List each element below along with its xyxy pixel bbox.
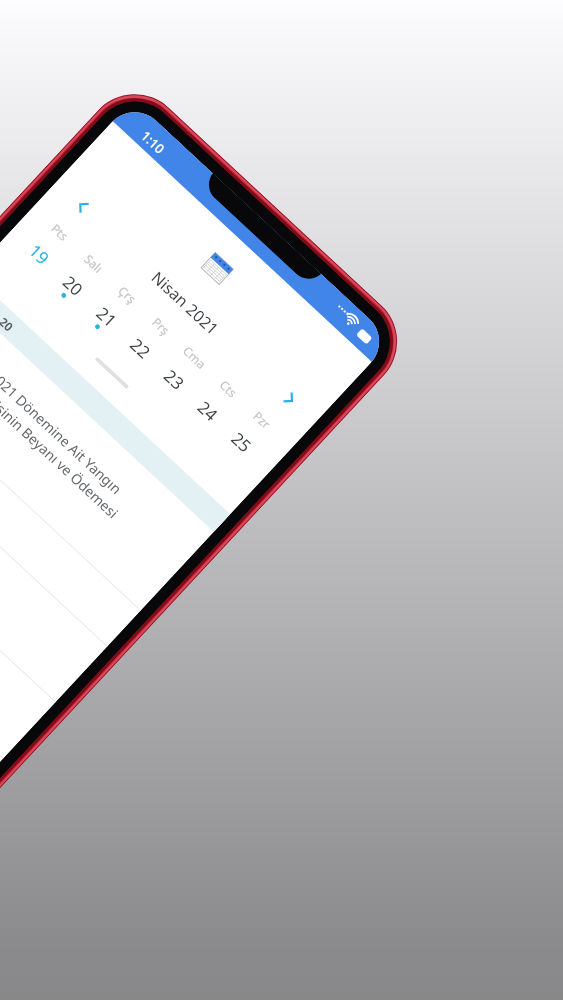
button[interactable]: Next week xyxy=(273,382,307,416)
staticText: 20 xyxy=(48,261,98,310)
button[interactable]: Cma xyxy=(145,332,220,409)
staticText: 23 xyxy=(149,355,199,404)
button[interactable]: Pts xyxy=(10,207,86,283)
staticText: 19 xyxy=(15,230,64,278)
staticText: 1:10 xyxy=(137,127,169,158)
staticText: 21 xyxy=(82,293,131,341)
staticText: Pts xyxy=(38,210,82,253)
button[interactable]: Cts xyxy=(178,363,254,440)
button[interactable]: 1-31 Mart 2021 Dönemine Ait Yangın Sigor… xyxy=(0,291,214,610)
staticText: 24 xyxy=(183,387,232,435)
button[interactable]: Salı xyxy=(43,238,119,315)
staticText: 22 xyxy=(116,324,165,372)
staticText: Pzr xyxy=(240,398,284,441)
staticText: 25 xyxy=(217,418,266,466)
button[interactable] xyxy=(0,370,140,646)
staticText: Cma xyxy=(172,336,217,379)
staticText: Çrş xyxy=(105,273,150,316)
staticText: Nisan 2021 xyxy=(48,174,322,432)
button[interactable]: Previous week xyxy=(65,189,99,223)
staticText: Prş xyxy=(139,304,183,347)
staticText: Cts xyxy=(206,367,251,410)
button[interactable] xyxy=(0,462,55,758)
staticText: 1-31 Mart 2021 Dönemine Ait Yangın Sigor… xyxy=(0,320,169,554)
button[interactable]: Çrş xyxy=(77,269,153,346)
staticText: Nisan 20 xyxy=(0,288,17,335)
button[interactable]: Pzr xyxy=(212,395,288,471)
button[interactable]: Prş xyxy=(111,301,187,377)
staticText: Salı xyxy=(71,242,116,285)
button[interactable] xyxy=(0,406,107,702)
